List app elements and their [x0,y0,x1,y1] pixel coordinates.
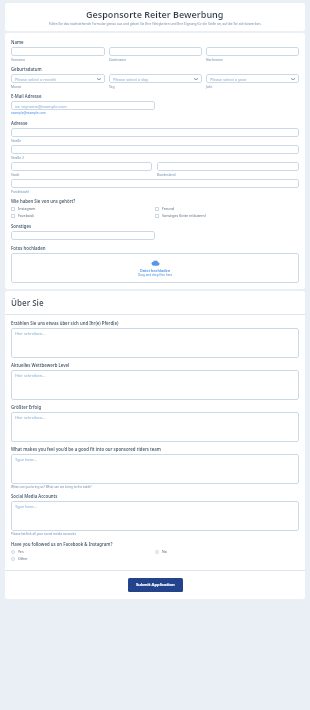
staticText: Aktuelles Wettbewerb Level [11,362,70,368]
staticText: Füllen Sie das nachstehende Formular gen… [15,22,295,26]
staticText: Vorname [11,57,26,61]
button[interactable]: No [155,548,299,555]
staticText: Geburtsdatum [11,66,42,72]
button[interactable]: Hier schreiben... [11,370,299,400]
staticText: Please select a year [210,77,247,82]
staticText: Straße 2 [11,155,24,159]
staticText: Facebook [18,213,35,218]
button[interactable]: Type here... [11,501,299,531]
button[interactable]: Yes [11,548,155,555]
button[interactable]: Instagram [11,205,155,212]
staticText: Submit Application [136,582,175,588]
button[interactable]: Type here... [11,454,299,484]
staticText: Gesponsorte Reiter Bewerbung [86,8,224,20]
staticText: Other [18,556,28,561]
staticText: E-Mail Adresse [11,93,42,99]
button[interactable] [11,231,155,240]
button[interactable] [109,47,202,56]
staticText: Please list/link all your social media a… [11,532,76,536]
staticText: Nachname [206,57,223,61]
staticText: What can you bring us? What can we bring… [11,485,92,489]
staticText: Postleitzahl [11,189,29,193]
button[interactable]: Datei hochladen [11,253,299,283]
button[interactable] [11,145,299,154]
staticText: Yes [18,549,24,554]
staticText: Type here... [15,457,37,462]
staticText: example@example.com [11,111,46,115]
staticText: Social Media Accounts [11,493,58,499]
button[interactable]: Submit Application [128,578,183,592]
staticText: Name [11,39,24,45]
staticText: Type here... [15,504,37,509]
button[interactable]: ex: myname@example.com [11,101,155,110]
button[interactable]: Sonstiges (bitte erläutern) [155,212,299,219]
staticText: Have you followed us on Facebook & Insta… [11,541,113,547]
staticText: Größter Erfolg [11,404,42,410]
staticText: Bundesland [157,172,176,176]
staticText: Instagram [18,206,36,211]
button[interactable]: Hier schreiben... [11,412,299,442]
staticText: Drag and drop files here [138,273,173,277]
staticText: Hier schreiben... [15,373,46,378]
staticText: Fotos hochladen [11,245,46,251]
staticText: Hier schreiben... [15,331,46,336]
staticText: Sonstiges (bitte erläutern) [162,213,206,218]
button[interactable] [11,179,299,188]
button[interactable] [11,128,299,137]
button[interactable]: Hier schreiben... [11,328,299,358]
button[interactable] [157,162,299,171]
button[interactable] [206,47,299,56]
staticText: Jahr [206,84,213,88]
staticText: Sonstiges [11,223,32,229]
button[interactable]: Please select a year [206,74,299,83]
staticText: Über Sie [11,297,44,308]
button[interactable]: Facebook [11,212,155,219]
staticText: No [162,549,167,554]
button[interactable] [11,162,152,171]
staticText: Hier schreiben... [15,415,46,420]
staticText: Zweitname [109,57,127,61]
staticText: Erzählen Sie uns etwas über sich und Ihr… [11,320,119,326]
staticText: Stadt [11,172,20,176]
staticText: Tag [109,84,115,88]
staticText: Wie haben Sie von uns gehört? [11,198,76,204]
staticText: Adresse [11,120,28,126]
button[interactable]: Freund [155,205,299,212]
staticText: Please select a month [15,77,56,82]
staticText: ex: myname@example.com [15,104,67,109]
button[interactable]: Other [11,555,155,562]
staticText: Please select a day [113,77,149,82]
staticText: Datei hochladen [140,268,171,273]
staticText: Freund [162,206,174,211]
button[interactable]: Please select a day [109,74,202,83]
staticText: Monat [11,84,22,88]
staticText: What makes you feel you'd be a good fit … [11,446,161,452]
button[interactable]: Please select a month [11,74,105,83]
staticText: Straße [11,138,22,142]
button[interactable] [11,47,105,56]
